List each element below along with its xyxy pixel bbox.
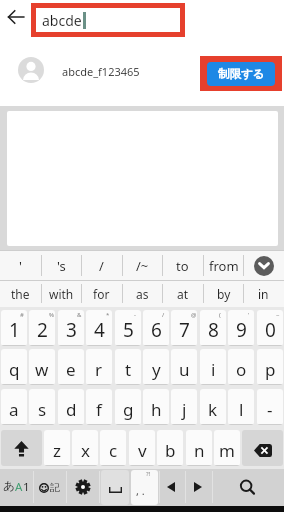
button[interactable]: the [0, 281, 41, 306]
button[interactable]: b [157, 430, 183, 466]
button[interactable]: for [81, 281, 122, 306]
staticText: q [9, 358, 20, 381]
button[interactable]: at [162, 281, 203, 306]
button[interactable]: y [143, 349, 169, 385]
staticText: ( [219, 311, 221, 319]
staticText: 3 [66, 317, 77, 343]
button[interactable]: 7 [171, 310, 197, 346]
button[interactable]: j [171, 389, 197, 425]
staticText: u [179, 358, 190, 381]
staticText: ' [19, 257, 22, 275]
staticText: at [177, 286, 189, 302]
staticText: @ [191, 311, 197, 319]
staticText: ' [248, 311, 250, 319]
button[interactable]: 制限する [207, 62, 275, 86]
button[interactable]: s [29, 389, 55, 425]
staticText: 9 [236, 317, 247, 343]
button[interactable]: r [86, 349, 112, 385]
button[interactable] [131, 470, 158, 505]
button[interactable]: z [44, 430, 70, 466]
staticText: k [208, 398, 218, 421]
button[interactable] [158, 469, 184, 505]
staticText: 2 [37, 317, 48, 343]
button[interactable]: w [29, 349, 55, 385]
staticText: 0 [265, 317, 276, 343]
button[interactable]: 6 [143, 310, 169, 346]
button[interactable]: 8 [200, 310, 226, 346]
button[interactable]: i [200, 349, 226, 385]
button[interactable]: k [200, 389, 226, 425]
staticText: abcde_f123465 [62, 64, 140, 79]
staticText: 's [57, 257, 66, 275]
button[interactable]: 1 [1, 310, 27, 346]
button[interactable] [2, 3, 30, 31]
staticText: i [211, 358, 216, 381]
button[interactable]: f [86, 389, 112, 425]
button[interactable] [243, 251, 284, 280]
button[interactable]: 4 [86, 310, 112, 346]
button[interactable]: 5 [115, 310, 141, 346]
staticText: as [136, 286, 149, 302]
button[interactable]: h [143, 389, 169, 425]
staticText: w [35, 358, 49, 381]
button[interactable] [1, 430, 42, 466]
staticText: the [11, 286, 30, 302]
staticText: v [138, 439, 147, 462]
button[interactable]: from [203, 251, 244, 280]
button[interactable]: q [1, 349, 27, 385]
button[interactable] [242, 430, 283, 466]
button[interactable]: あ [0, 469, 33, 505]
staticText: , . [136, 483, 145, 498]
button[interactable]: t [115, 349, 141, 385]
button[interactable]: e [58, 349, 84, 385]
button[interactable]: 's [41, 251, 82, 280]
button[interactable]: n [186, 430, 212, 466]
button[interactable] [101, 470, 129, 505]
button[interactable]: - [257, 389, 283, 425]
button[interactable]: ' [0, 251, 41, 280]
button[interactable]: m [214, 430, 240, 466]
button[interactable]: 記 [33, 469, 66, 505]
button[interactable]: g [115, 389, 141, 425]
staticText: b [165, 439, 176, 462]
staticText: e [66, 358, 76, 381]
button[interactable]: v [129, 430, 155, 466]
button[interactable]: 0 [257, 310, 283, 346]
button[interactable]: with [41, 281, 82, 306]
button[interactable] [66, 469, 99, 505]
staticText: f [96, 398, 102, 421]
button[interactable]: in [243, 281, 284, 306]
button[interactable]: d [58, 389, 84, 425]
staticText: d [66, 398, 77, 421]
staticText: h [151, 398, 162, 421]
button[interactable]: a [1, 389, 27, 425]
staticText: from [209, 257, 239, 275]
button[interactable]: / [81, 251, 122, 280]
staticText: n [194, 439, 205, 462]
button[interactable]: 3 [58, 310, 84, 346]
button[interactable]: to [162, 251, 203, 280]
button[interactable]: p [257, 349, 283, 385]
staticText: o [236, 358, 247, 381]
button[interactable]: 2 [29, 310, 55, 346]
staticText: ~ [276, 311, 280, 319]
button[interactable]: c [100, 430, 126, 466]
staticText: j [182, 398, 187, 421]
button[interactable]: abcde [36, 8, 180, 32]
button[interactable]: by [203, 281, 244, 306]
staticText: p [265, 358, 276, 381]
button[interactable]: 9 [228, 310, 254, 346]
staticText: g [123, 398, 134, 421]
button[interactable]: /~ [122, 251, 163, 280]
staticText: 制限する [218, 67, 265, 81]
button[interactable] [212, 469, 284, 505]
button[interactable] [185, 469, 211, 505]
staticText: ?! [146, 470, 151, 478]
button[interactable]: o [228, 349, 254, 385]
staticText: x [81, 439, 90, 462]
button[interactable]: l [228, 389, 254, 425]
button[interactable]: as [122, 281, 163, 306]
button[interactable]: u [171, 349, 197, 385]
button[interactable]: x [72, 430, 98, 466]
staticText: t [125, 358, 132, 381]
